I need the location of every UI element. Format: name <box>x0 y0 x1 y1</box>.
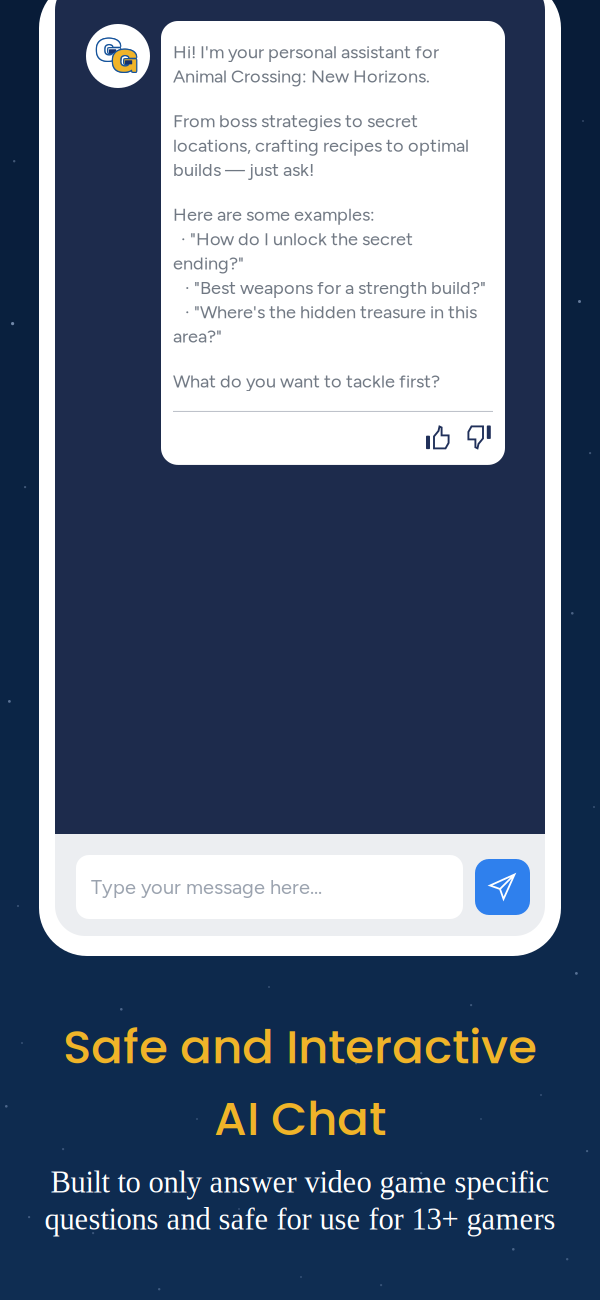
staticText: G <box>94 32 121 66</box>
staticText: G <box>110 44 137 78</box>
staticText: G <box>95 33 122 67</box>
staticText: G <box>111 45 138 80</box>
staticText: G <box>95 34 122 69</box>
staticText: Safe and Interactive <box>63 1014 537 1080</box>
staticText: Hi! I'm your personal assistant for Anim… <box>173 41 439 87</box>
staticText: G <box>112 44 139 79</box>
staticText: What do you want to tackle first? <box>173 370 440 392</box>
button[interactable]: Send message <box>475 859 530 915</box>
staticText: Type your message here... <box>91 875 322 899</box>
staticText: G <box>94 33 121 67</box>
staticText: G <box>94 33 121 68</box>
staticText: G <box>97 33 124 67</box>
staticText: G <box>110 44 137 79</box>
staticText: G <box>96 32 123 66</box>
button[interactable]: Good response <box>424 423 452 452</box>
staticText: From boss strategies to secret locations… <box>173 110 469 181</box>
staticText: Built to only answer video game specific <box>50 1165 549 1199</box>
button[interactable]: Bad response <box>465 423 493 452</box>
staticText: G <box>113 44 140 78</box>
staticText: G <box>95 31 122 66</box>
staticText: G <box>96 33 123 68</box>
staticText: G <box>111 44 138 78</box>
staticText: Here are some examples: · "How do I unlo… <box>173 204 486 347</box>
staticText: G <box>110 43 137 77</box>
staticText: G <box>111 42 138 77</box>
staticText: questions and safe for use for 13+ gamer… <box>44 1202 555 1236</box>
staticText: AI Chat <box>214 1086 386 1151</box>
staticText: G <box>112 43 139 77</box>
